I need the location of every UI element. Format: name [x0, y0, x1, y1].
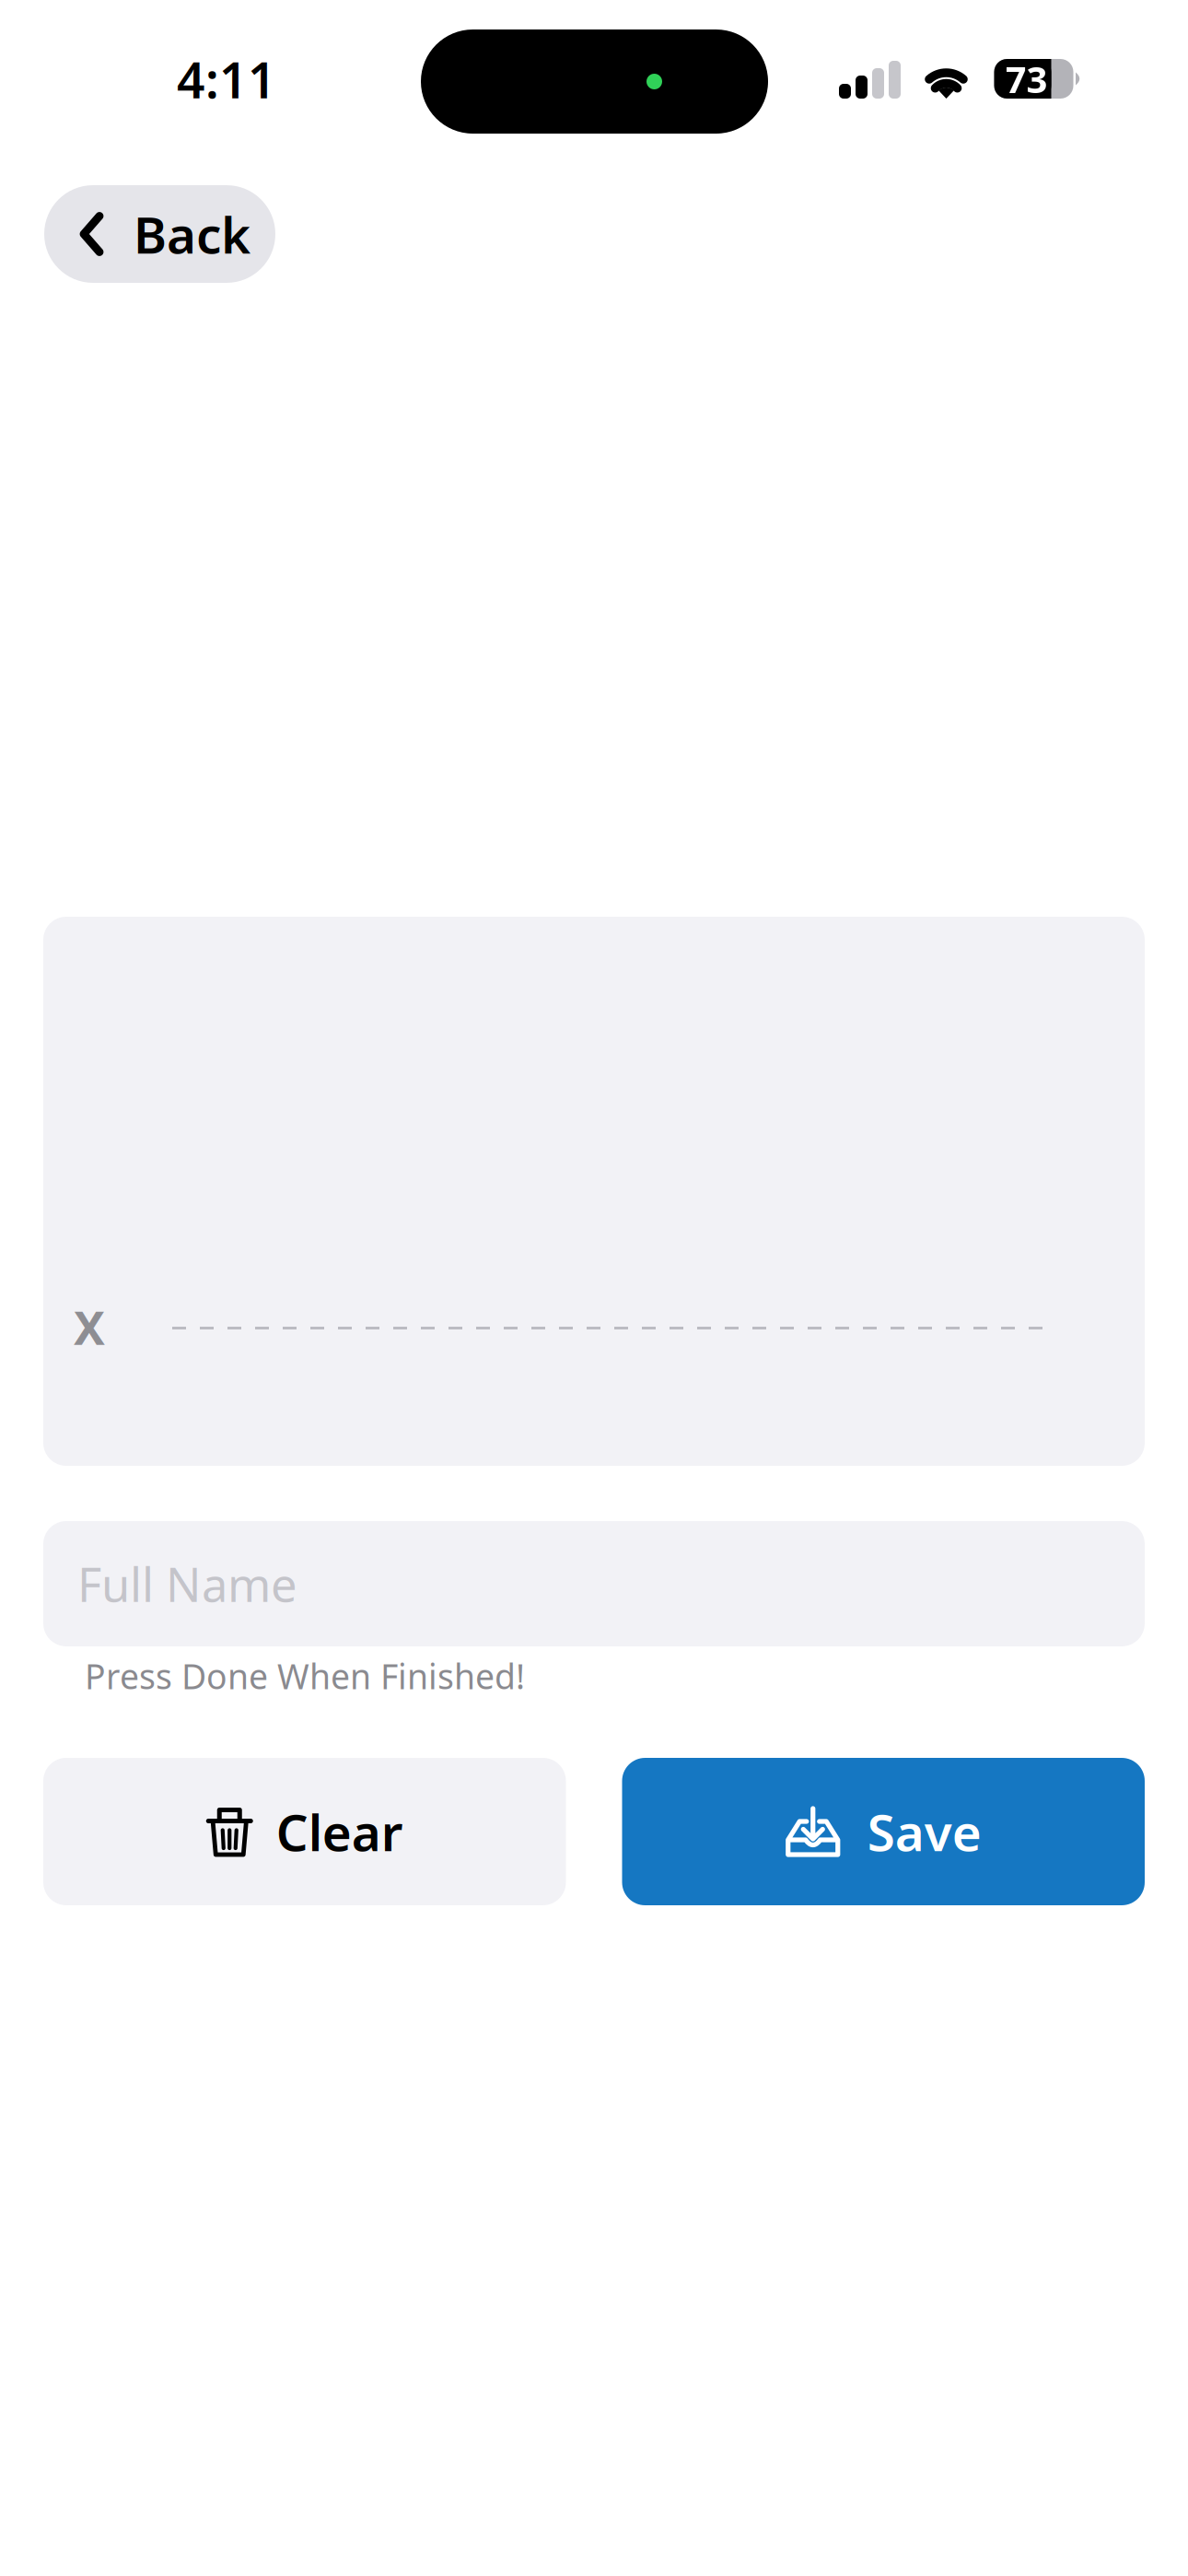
staticText: Save: [867, 1798, 982, 1865]
button[interactable]: Save: [622, 1758, 1145, 1905]
staticText: Back: [134, 201, 250, 267]
staticText: Clear: [276, 1798, 403, 1865]
staticText: X: [74, 1296, 105, 1358]
staticText: 4:11: [177, 47, 276, 112]
button[interactable]: Clear: [43, 1758, 566, 1905]
button[interactable]: Full Name: [43, 1521, 1145, 1646]
button[interactable]: Signature area: [43, 917, 1145, 1466]
staticText: Full Name: [77, 1553, 297, 1615]
button[interactable]: Back: [44, 185, 275, 283]
staticText: Press Done When Finished!: [85, 1653, 525, 1699]
staticText: 73: [1005, 54, 1048, 103]
